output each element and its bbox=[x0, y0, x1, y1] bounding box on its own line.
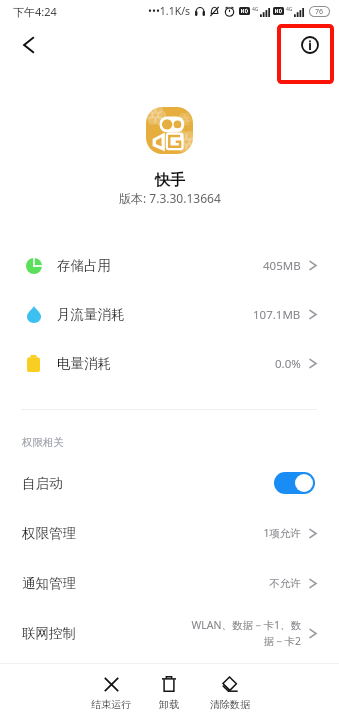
button[interactable]: Back bbox=[8, 25, 48, 65]
staticText: 电量消耗 bbox=[57, 355, 111, 372]
staticText: 快手 bbox=[155, 171, 185, 190]
staticText: 405MB bbox=[263, 258, 301, 274]
button[interactable]: 存储占用 bbox=[0, 241, 339, 290]
staticText: 4G bbox=[286, 6, 293, 13]
button[interactable]: 卸载 bbox=[141, 672, 197, 715]
staticText: 下午4:24 bbox=[13, 4, 57, 19]
button[interactable]: 自启动 bbox=[0, 458, 339, 508]
staticText: 不允许 bbox=[269, 577, 301, 590]
staticText: 1项允许 bbox=[263, 526, 301, 540]
staticText: 权限相关 bbox=[22, 436, 64, 449]
button[interactable]: 月流量消耗 bbox=[0, 290, 339, 339]
staticText: 通知管理 bbox=[22, 575, 76, 592]
button[interactable]: 清除数据 bbox=[202, 672, 258, 715]
staticText: 107.1MB bbox=[253, 307, 301, 323]
staticText: 存储占用 bbox=[57, 257, 111, 274]
button[interactable]: 通知管理 bbox=[0, 558, 339, 608]
staticText: 卸载 bbox=[159, 698, 179, 711]
staticText: 4G bbox=[252, 6, 259, 13]
staticText: 76 bbox=[315, 7, 324, 17]
button[interactable]: 权限管理 bbox=[0, 508, 339, 558]
staticText: 版本: 7.3.30.13664 bbox=[119, 190, 221, 206]
staticText: 清除数据 bbox=[210, 698, 250, 711]
staticText: 月流量消耗 bbox=[57, 306, 125, 323]
staticText: 联网控制 bbox=[22, 625, 76, 642]
button[interactable]: 结束运行 bbox=[83, 672, 139, 715]
staticText: 自启动 bbox=[22, 475, 63, 492]
staticText: •••1.1K/s bbox=[148, 4, 191, 18]
button[interactable]: App info bbox=[290, 25, 330, 65]
button[interactable]: 电量消耗 bbox=[0, 339, 339, 388]
button[interactable]: 联网控制 bbox=[0, 608, 339, 658]
staticText: 0.0% bbox=[275, 356, 301, 372]
staticText: 结束运行 bbox=[91, 698, 131, 711]
staticText: 权限管理 bbox=[22, 525, 76, 542]
staticText: WLAN、数据－卡1、数 据－卡2 bbox=[191, 618, 301, 648]
